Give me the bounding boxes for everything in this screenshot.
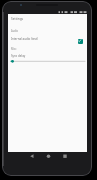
button[interactable] <box>58 152 72 161</box>
button[interactable] <box>42 152 56 161</box>
button[interactable] <box>78 39 83 44</box>
staticText: Settings <box>11 17 24 21</box>
button[interactable]: Internal audio (test) <box>11 37 71 42</box>
staticText: Sync delay <box>11 54 26 58</box>
button[interactable] <box>26 152 40 161</box>
button[interactable]: Sync delay <box>11 54 51 59</box>
staticText: Internal audio (test) <box>11 37 38 41</box>
button[interactable] <box>10 58 87 65</box>
staticText: Misc <box>11 47 17 51</box>
button[interactable]: Settings <box>11 17 41 23</box>
staticText: Audio <box>11 29 19 33</box>
